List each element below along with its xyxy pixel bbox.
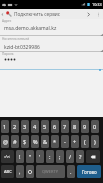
staticText: :: [49, 153, 51, 160]
staticText: 5: [43, 123, 47, 130]
button[interactable]: 2: [11, 120, 19, 133]
staticText: Носитель ключей: [2, 37, 30, 41]
button[interactable]: @: [1, 135, 9, 148]
button[interactable]: ': [36, 150, 44, 163]
button[interactable]: ): [91, 135, 99, 148]
staticText: &: [43, 138, 48, 145]
staticText: 9: [83, 123, 87, 130]
button[interactable]: QWERTY: [36, 165, 65, 178]
staticText: 6: [53, 123, 57, 130]
button[interactable]: /: [66, 150, 74, 163]
staticText: 10:33: [92, 2, 102, 7]
button[interactable]: Voice input: [26, 165, 34, 178]
staticText: Подключить сервис: [14, 11, 61, 18]
staticText: 1: [3, 123, 7, 130]
staticText: Адрес: [2, 19, 12, 23]
staticText: 0: [93, 123, 97, 130]
staticText: ': [39, 153, 41, 160]
button[interactable]: 7: [61, 120, 69, 133]
button[interactable]: 8: [71, 120, 79, 133]
button[interactable]: 4: [31, 120, 39, 133]
staticText: ): [94, 138, 96, 145]
button[interactable]: &: [41, 135, 49, 148]
button[interactable]: =\<: [1, 150, 14, 163]
button[interactable]: ABC: [1, 165, 14, 178]
staticText: Готово: [82, 169, 97, 175]
staticText: Пароль: [2, 52, 14, 56]
button[interactable]: 1: [1, 120, 9, 133]
button[interactable]: +: [71, 135, 79, 148]
staticText: 3: [23, 123, 27, 130]
button[interactable]: Backspace: [86, 150, 100, 163]
staticText: !: [19, 153, 21, 160]
button[interactable]: 3: [21, 120, 29, 133]
staticText: *: [53, 138, 57, 145]
staticText: ?: [79, 153, 82, 160]
button[interactable]: ": [26, 150, 34, 163]
button[interactable]: .: [67, 165, 75, 178]
button[interactable]: 5: [41, 120, 49, 133]
staticText: $: [23, 138, 27, 145]
staticText: 4: [33, 123, 37, 130]
button[interactable]: ?: [76, 150, 84, 163]
button[interactable]: :: [46, 150, 54, 163]
staticText: msa.demo.akkamal.kz: [4, 25, 57, 32]
staticText: 2: [13, 123, 17, 130]
button[interactable]: ,: [16, 165, 24, 178]
staticText: 7: [63, 123, 67, 130]
button[interactable]: *: [51, 135, 59, 148]
staticText: -: [64, 138, 66, 145]
button[interactable]: [0, 51, 103, 69]
staticText: QWERTY: [42, 169, 59, 174]
button[interactable]: %: [31, 135, 39, 148]
button[interactable]: 9: [81, 120, 89, 133]
staticText: ;: [59, 153, 61, 160]
staticText: =\<: [4, 154, 11, 159]
staticText: kzid-bt0329986: [4, 44, 40, 51]
staticText: 8: [73, 123, 77, 130]
button[interactable]: $: [21, 135, 29, 148]
staticText: (: [84, 138, 86, 145]
button[interactable]: ;: [56, 150, 64, 163]
button[interactable]: (: [81, 135, 89, 148]
button[interactable]: -: [61, 135, 69, 148]
button[interactable]: More options: [94, 9, 103, 19]
button[interactable]: !: [16, 150, 24, 163]
button[interactable]: Готово: [77, 165, 101, 178]
staticText: ABC: [4, 169, 12, 174]
button[interactable]: #: [11, 135, 19, 148]
staticText: #: [13, 138, 17, 145]
button[interactable]: Next: [82, 9, 94, 19]
staticText: .: [70, 168, 72, 175]
staticText: %: [33, 138, 38, 145]
staticText: @: [3, 138, 8, 145]
button[interactable]: [0, 36, 103, 51]
staticText: ,: [19, 168, 21, 175]
button[interactable]: [0, 19, 103, 36]
staticText: ": [29, 153, 32, 160]
button[interactable]: Подключить сервис: [0, 9, 82, 19]
staticText: +: [73, 138, 77, 145]
staticText: /: [69, 153, 72, 160]
button[interactable]: 6: [51, 120, 59, 133]
button[interactable]: 0: [91, 120, 99, 133]
